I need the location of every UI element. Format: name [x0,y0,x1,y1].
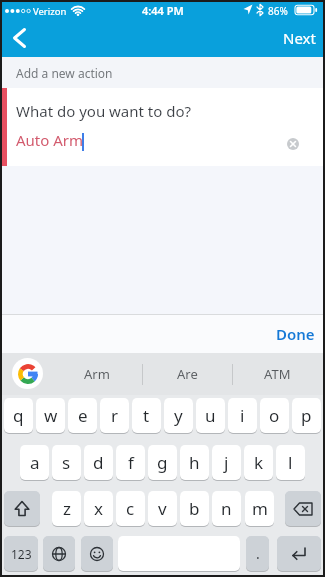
staticText: Arm [84,365,110,383]
staticText: What do you want to do? [16,101,192,121]
button[interactable]: z [52,491,81,526]
staticText: Auto Arm [16,130,84,150]
button[interactable]: x [84,491,113,526]
staticText: g [157,451,168,474]
staticText: m [252,497,268,520]
staticText: ATM [264,365,291,383]
staticText: . [256,544,260,563]
staticText: s [62,451,71,474]
staticText: e [78,404,88,427]
staticText: Done [276,324,315,344]
button[interactable]: q [4,398,33,433]
button[interactable]: u [196,398,225,433]
button[interactable] [285,491,321,526]
button[interactable]: e [68,398,97,433]
staticText: o [269,404,280,427]
button[interactable]: o [260,398,289,433]
button[interactable]: v [148,491,177,526]
staticText: y [174,404,183,427]
button[interactable]: t [132,398,161,433]
button[interactable]: j [212,445,241,480]
button[interactable]: m [245,491,274,526]
button[interactable]: y [164,398,193,433]
button[interactable]: a [20,445,49,480]
button[interactable]: r [100,398,129,433]
staticText: Are [177,365,198,383]
staticText: k [254,451,264,474]
staticText: a [30,451,40,474]
staticText: q [13,404,24,427]
staticText: v [158,497,167,520]
button[interactable]: s [52,445,81,480]
button[interactable] [81,536,113,571]
staticText: l [288,451,293,474]
button[interactable] [277,536,321,571]
staticText: b [189,497,200,520]
staticText: p [301,404,312,427]
button[interactable]: g [148,445,177,480]
button[interactable]: Arm [52,353,142,395]
button[interactable]: Next [270,22,325,54]
staticText: Add a new action [16,65,113,81]
button[interactable] [4,24,34,52]
button[interactable]: ATM [232,353,322,395]
button[interactable] [285,136,301,152]
button[interactable]: 123 [4,536,38,571]
staticText: d [93,451,104,474]
staticText: j [224,451,229,474]
button[interactable]: c [116,491,145,526]
button[interactable]: p [292,398,321,433]
staticText: n [221,497,232,520]
staticText: 4:44 PM [142,3,184,18]
button[interactable]: h [180,445,209,480]
button[interactable]: Are [142,353,232,395]
button[interactable]: k [244,445,273,480]
staticText: Next [283,28,316,48]
staticText: r [111,404,119,427]
staticText: h [189,451,200,474]
button[interactable] [0,88,325,166]
button[interactable]: f [116,445,145,480]
staticText: f [128,451,134,474]
staticText: z [63,497,71,520]
button[interactable]: i [228,398,257,433]
button[interactable] [12,358,43,389]
button[interactable]: d [84,445,113,480]
button[interactable] [43,536,75,571]
button[interactable]: . [246,536,269,571]
staticText: 86% [268,4,288,18]
staticText: c [126,497,135,520]
staticText: Verizon [33,5,67,18]
button[interactable]: b [180,491,209,526]
button[interactable] [4,491,40,526]
button[interactable]: n [212,491,241,526]
button[interactable]: w [36,398,65,433]
staticText: u [205,404,216,427]
staticText: t [143,404,150,427]
button[interactable]: Done [255,315,325,353]
staticText: x [94,497,103,520]
staticText: 123 [11,546,32,562]
button[interactable]: l [276,445,305,480]
staticText: w [44,404,58,427]
staticText: i [240,404,245,427]
